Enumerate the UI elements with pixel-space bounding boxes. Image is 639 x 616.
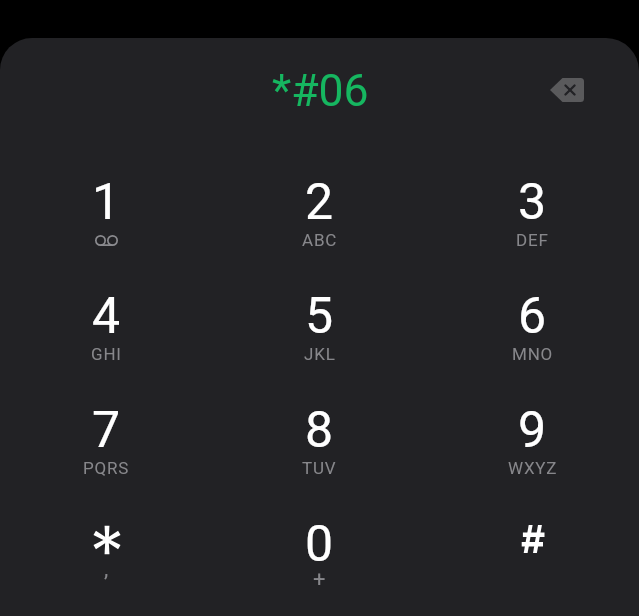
button[interactable]: 2 [213,168,426,282]
button[interactable]: 5 [213,282,426,396]
staticText: JKL [304,344,336,364]
staticText: 4 [92,287,121,346]
staticText: 0 [305,515,334,574]
button[interactable]: 6 [426,282,639,396]
staticText: MNO [512,344,554,364]
staticText: 5 [305,287,334,346]
button[interactable]: Backspace [541,64,593,116]
button[interactable]: 1 [0,168,213,282]
button[interactable]: , [0,510,213,616]
staticText: TUV [302,458,337,478]
button[interactable]: 7 [0,396,213,510]
button[interactable]: 8 [213,396,426,510]
button[interactable]: 3 [426,168,639,282]
staticText: 6 [518,287,547,346]
staticText: 7 [92,401,121,460]
button[interactable]: 0 [213,510,426,616]
button[interactable]: 9 [426,396,639,510]
staticText: *#06 [272,65,369,117]
staticText: ABC [302,230,338,250]
staticText: , [104,556,109,582]
staticText: 9 [518,401,547,460]
staticText: 3 [518,173,547,232]
staticText: 1 [92,173,121,232]
staticText: + [313,567,326,593]
button[interactable]: 4 [0,282,213,396]
staticText: GHI [91,344,122,364]
staticText: PQRS [83,458,130,478]
staticText: DEF [516,230,549,250]
staticText: WXYZ [508,458,558,478]
button[interactable] [426,510,639,616]
staticText: 2 [305,173,334,232]
staticText: 8 [305,401,334,460]
